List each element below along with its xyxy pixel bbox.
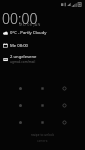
staticText: ugmail.com/mail — [10, 60, 36, 64]
staticText: swipe to unlock — [31, 133, 55, 137]
button[interactable]: Unread mail — [2, 54, 64, 64]
button[interactable]: App 7 — [9, 114, 31, 131]
button[interactable]: App 8 — [31, 114, 53, 131]
staticText: 2 ungelesene — [10, 54, 37, 60]
button[interactable]: App 9 — [53, 114, 75, 131]
button[interactable]: App 6 — [53, 97, 75, 114]
staticText: camera — [37, 139, 48, 143]
button[interactable]: App 5 — [31, 97, 53, 114]
button[interactable]: App 1 — [9, 80, 31, 97]
staticText: 00:00 — [2, 9, 38, 28]
staticText: 0°C - Partly Cloudy — [10, 30, 47, 36]
button[interactable]: App 4 — [9, 97, 31, 114]
staticText: Me 08:00 — [10, 43, 28, 49]
button[interactable]: App 3 — [53, 80, 75, 97]
button[interactable]: Weather — [2, 29, 64, 36]
button[interactable]: App 2 — [31, 80, 53, 97]
button[interactable]: Calendar event — [2, 42, 64, 49]
staticText: MO 08 JAN — [19, 22, 41, 27]
